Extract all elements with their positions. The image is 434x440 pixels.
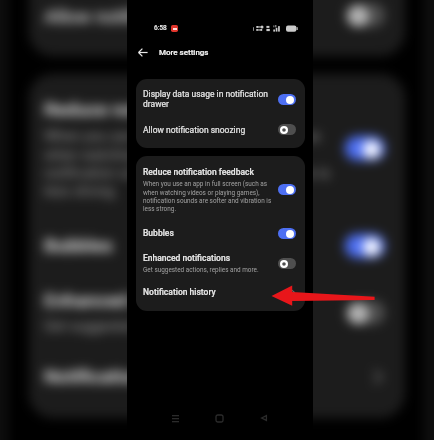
button[interactable]: Toggle off — [278, 258, 296, 269]
button[interactable]: Recents — [164, 407, 186, 429]
button[interactable]: Reduce notification feedback — [136, 156, 305, 220]
staticText: More settings — [159, 48, 209, 57]
button[interactable]: Back — [253, 407, 275, 429]
button[interactable]: Back — [133, 42, 153, 62]
staticText: Reduce notification feedback — [143, 167, 254, 177]
staticText: Enhanced notifications — [44, 289, 240, 311]
button[interactable]: Toggle off — [278, 124, 296, 135]
staticText: Enhanced notifications — [143, 253, 231, 263]
button[interactable]: Toggle on — [345, 234, 385, 258]
button[interactable]: Notification history — [136, 281, 305, 303]
staticText: When you use an app in full screen (such… — [143, 180, 275, 212]
staticText: 6:58 — [154, 24, 167, 32]
staticText: Get suggested actions, replies and more. — [44, 318, 302, 336]
staticText: Bubbles — [44, 234, 345, 256]
button[interactable]: Enhanced notifications — [29, 274, 405, 351]
button[interactable]: Toggle on — [278, 184, 296, 195]
staticText: Display data usage in notification drawe… — [143, 89, 275, 109]
button[interactable]: Bubbles — [136, 220, 305, 246]
staticText: Allow notification snoozing — [143, 125, 275, 135]
button[interactable]: Reduce notification feedback — [29, 74, 405, 216]
button[interactable]: Toggle on — [278, 228, 296, 239]
button[interactable]: Toggle on — [345, 136, 385, 160]
button[interactable]: Bubbles — [29, 216, 405, 274]
button[interactable]: Allow notification snoozing — [136, 119, 305, 140]
staticText: Notification history — [44, 365, 372, 387]
staticText: Reduce notification feedback — [44, 98, 291, 120]
button[interactable]: Display data usage in notification drawe… — [136, 79, 305, 119]
button[interactable]: Notification history — [29, 351, 405, 400]
button[interactable]: Toggle off — [345, 300, 385, 325]
button[interactable]: Allow notification snoozing — [29, 0, 405, 38]
staticText: Allow notification snoozing — [44, 5, 338, 27]
staticText: Get suggested actions, replies and more. — [143, 266, 259, 274]
button[interactable]: Toggle on — [278, 94, 296, 105]
staticText: Notification history — [143, 287, 290, 297]
button[interactable]: Enhanced notifications — [136, 246, 305, 281]
staticText: Bubbles — [143, 228, 278, 238]
button[interactable]: Home — [208, 407, 230, 429]
button[interactable]: Toggle off — [345, 3, 385, 27]
staticText: When you use an app in full screen (such… — [44, 127, 338, 198]
